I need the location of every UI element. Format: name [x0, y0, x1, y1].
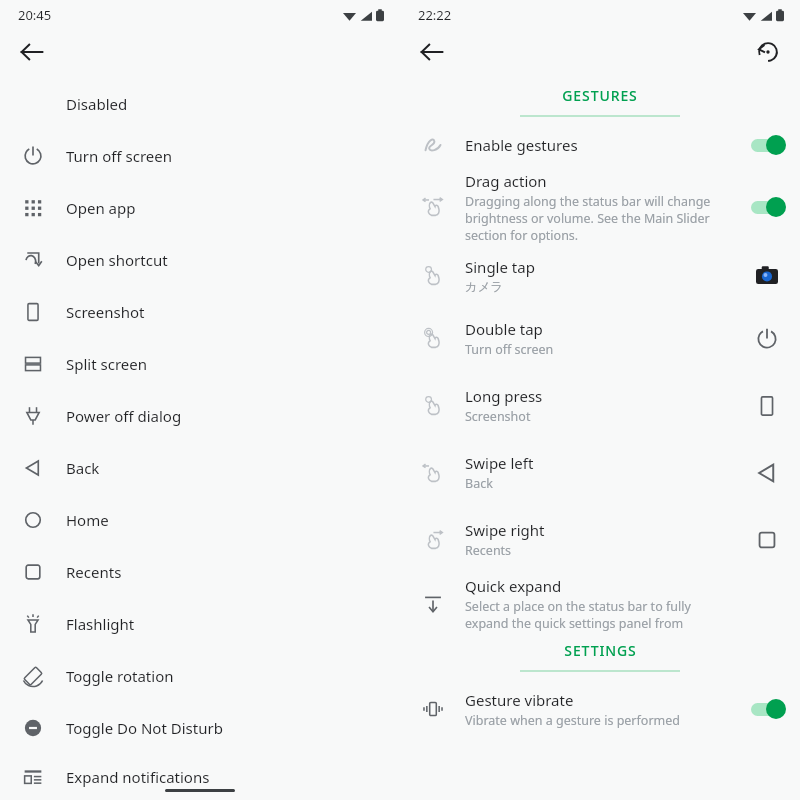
- staticText: Enable gestures: [465, 135, 578, 155]
- button[interactable]: Expand notifications: [0, 754, 400, 800]
- button[interactable]: Split screen: [0, 338, 400, 390]
- staticText: Screenshot: [465, 408, 531, 425]
- staticText: Back: [66, 458, 100, 478]
- button[interactable]: Enable gestures: [400, 123, 800, 167]
- staticText: Dragging along the status bar will chang…: [465, 193, 728, 244]
- staticText: Recents: [66, 562, 122, 582]
- button[interactable]: Recents: [0, 546, 400, 598]
- button[interactable]: Back: [14, 34, 50, 70]
- button[interactable]: Toggle: [746, 697, 788, 721]
- staticText: Double tap: [465, 319, 543, 339]
- button[interactable]: Single tap: [400, 247, 800, 305]
- staticText: Open app: [66, 198, 136, 218]
- staticText: Single tap: [465, 257, 535, 277]
- staticText: Toggle Do Not Disturb: [66, 718, 223, 738]
- button[interactable]: Back: [414, 34, 450, 70]
- staticText: Home: [66, 510, 109, 530]
- staticText: Split screen: [66, 354, 147, 374]
- staticText: Turn off screen: [66, 146, 172, 166]
- button[interactable]: Power off dialog: [0, 390, 400, 442]
- button[interactable]: Drag action: [400, 167, 800, 247]
- staticText: Turn off screen: [465, 341, 554, 358]
- staticText: Open shortcut: [66, 250, 168, 270]
- button[interactable]: Swipe right: [400, 506, 800, 573]
- staticText: Swipe left: [465, 453, 534, 473]
- staticText: Quick expand: [465, 576, 562, 596]
- button[interactable]: Restore defaults: [750, 34, 786, 70]
- button[interactable]: Home: [0, 494, 400, 546]
- staticText: Power off dialog: [66, 406, 182, 426]
- staticText: Screenshot: [66, 302, 145, 322]
- button[interactable]: Swipe left: [400, 439, 800, 506]
- staticText: Vibrate when a gesture is performed: [465, 712, 680, 729]
- staticText: 22:22: [418, 6, 452, 24]
- staticText: SETTINGS: [564, 641, 637, 660]
- staticText: Disabled: [66, 94, 128, 114]
- button[interactable]: Gesture vibrate: [400, 680, 800, 738]
- button[interactable]: Double tap: [400, 305, 800, 372]
- staticText: GESTURES: [562, 86, 638, 105]
- staticText: Long press: [465, 386, 543, 406]
- button[interactable]: Back: [0, 442, 400, 494]
- button[interactable]: Long press: [400, 372, 800, 439]
- staticText: Drag action: [465, 171, 547, 191]
- staticText: カメラ: [465, 279, 504, 295]
- staticText: Gesture vibrate: [465, 690, 574, 710]
- button[interactable]: Open app: [0, 182, 400, 234]
- button[interactable]: Open shortcut: [0, 234, 400, 286]
- button[interactable]: Disabled: [0, 78, 400, 130]
- staticText: Flashlight: [66, 614, 135, 634]
- button[interactable]: Toggle rotation: [0, 650, 400, 702]
- staticText: 20:45: [18, 6, 52, 24]
- button[interactable]: Turn off screen: [0, 130, 400, 182]
- staticText: Swipe right: [465, 520, 545, 540]
- staticText: Back: [465, 475, 493, 492]
- button[interactable]: Quick expand: [400, 573, 800, 635]
- staticText: Toggle rotation: [66, 666, 174, 686]
- button[interactable]: Screenshot: [0, 286, 400, 338]
- button[interactable]: Flashlight: [0, 598, 400, 650]
- button[interactable]: Toggle Do Not Disturb: [0, 702, 400, 754]
- staticText: Expand notifications: [66, 767, 210, 787]
- staticText: Recents: [465, 542, 512, 559]
- button[interactable]: Toggle: [746, 195, 788, 219]
- staticText: Select a place on the status bar to full…: [465, 598, 728, 632]
- button[interactable]: Toggle: [746, 133, 788, 157]
